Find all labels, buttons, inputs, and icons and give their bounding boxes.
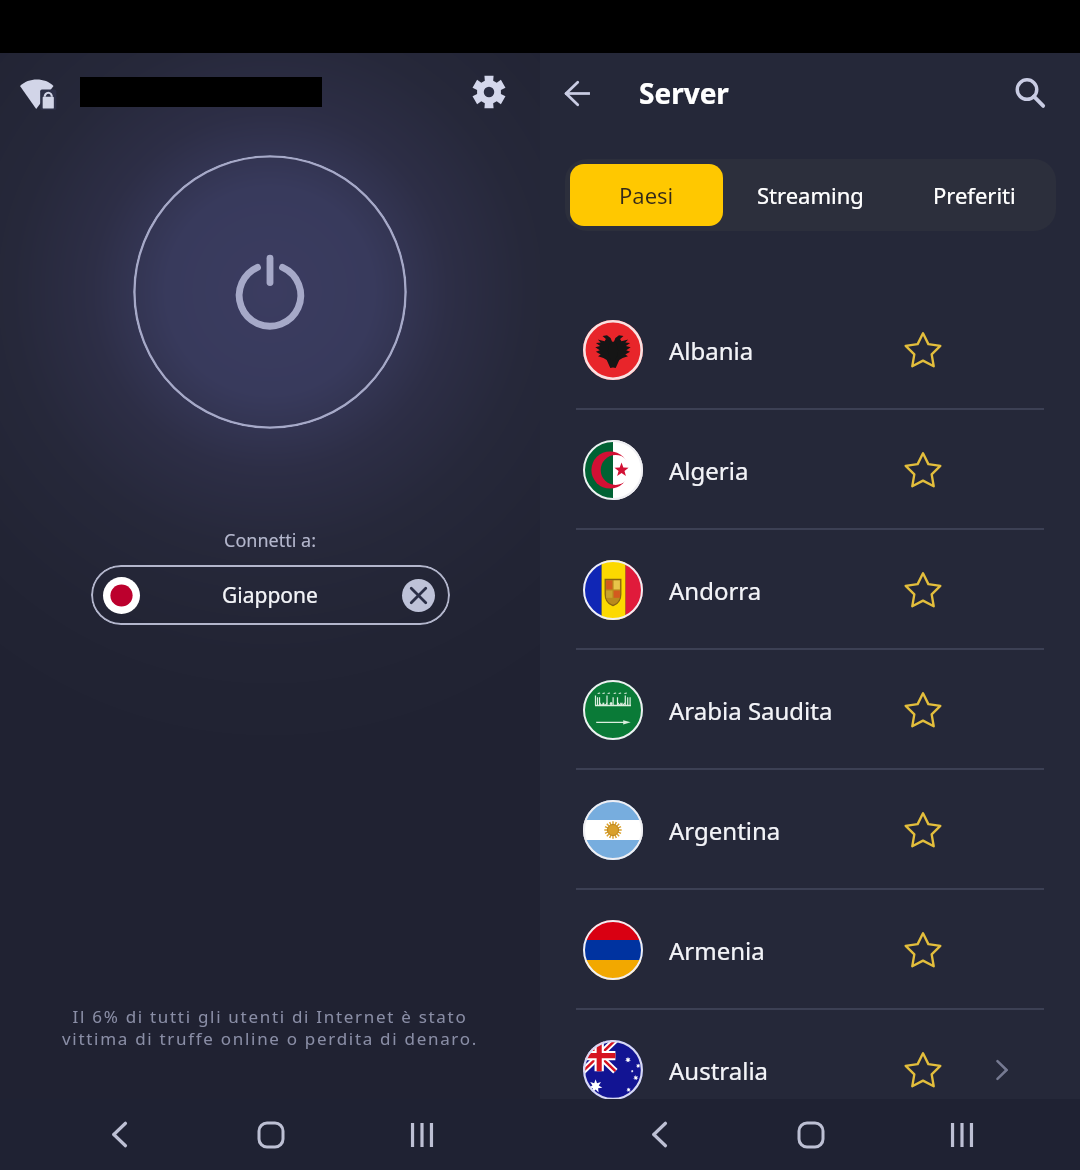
button[interactable]: Add to favourites bbox=[897, 684, 949, 736]
staticText: Algeria bbox=[669, 454, 749, 487]
staticText: Giappone bbox=[222, 581, 318, 610]
button[interactable]: Paesi bbox=[570, 164, 723, 226]
staticText: Preferiti bbox=[933, 180, 1016, 210]
button[interactable]: Argentina bbox=[540, 770, 1080, 890]
button[interactable]: Clear bbox=[400, 577, 436, 613]
staticText: Armenia bbox=[669, 934, 765, 967]
staticText: Andorra bbox=[669, 574, 762, 607]
staticText: Il 6% di tutti gli utenti di Internet è … bbox=[0, 1005, 540, 1050]
button[interactable]: Arabia Saudita bbox=[540, 650, 1080, 770]
button[interactable]: Recent apps bbox=[886, 1099, 1037, 1170]
button[interactable]: Back bbox=[583, 1099, 735, 1170]
staticText: Australia bbox=[669, 1054, 769, 1087]
staticText: Server bbox=[639, 74, 729, 112]
button[interactable]: Add to favourites bbox=[897, 564, 949, 616]
button[interactable]: Search bbox=[1006, 69, 1054, 117]
button[interactable]: Albania bbox=[540, 290, 1080, 410]
button[interactable]: Australia bbox=[540, 1010, 1080, 1130]
staticText: Streaming bbox=[757, 180, 864, 210]
button[interactable]: Streaming bbox=[728, 159, 892, 231]
button[interactable]: Connect bbox=[133, 155, 407, 429]
button[interactable]: Add to favourites bbox=[897, 1044, 949, 1096]
staticText: Paesi bbox=[619, 180, 674, 210]
button[interactable]: Preferiti bbox=[892, 159, 1056, 231]
staticText: Argentina bbox=[669, 814, 781, 847]
button[interactable]: Andorra bbox=[540, 530, 1080, 650]
button[interactable]: Settings bbox=[463, 66, 515, 118]
button[interactable]: Home bbox=[735, 1099, 886, 1170]
button[interactable]: Back bbox=[43, 1099, 195, 1170]
staticText: Connetti a: bbox=[0, 528, 540, 553]
button[interactable]: Add to favourites bbox=[897, 924, 949, 976]
button[interactable]: Home bbox=[195, 1099, 346, 1170]
button[interactable]: Back bbox=[554, 69, 602, 117]
button[interactable]: Giappone bbox=[91, 565, 450, 625]
button[interactable]: Add to favourites bbox=[897, 804, 949, 856]
button[interactable]: Add to favourites bbox=[897, 324, 949, 376]
button[interactable]: Add to favourites bbox=[897, 444, 949, 496]
button[interactable]: Armenia bbox=[540, 890, 1080, 1010]
button[interactable]: Algeria bbox=[540, 410, 1080, 530]
button[interactable]: Wi-Fi secured bbox=[14, 68, 62, 116]
button[interactable]: Recent apps bbox=[346, 1099, 497, 1170]
staticText: Arabia Saudita bbox=[669, 694, 833, 727]
staticText: Albania bbox=[669, 334, 754, 367]
